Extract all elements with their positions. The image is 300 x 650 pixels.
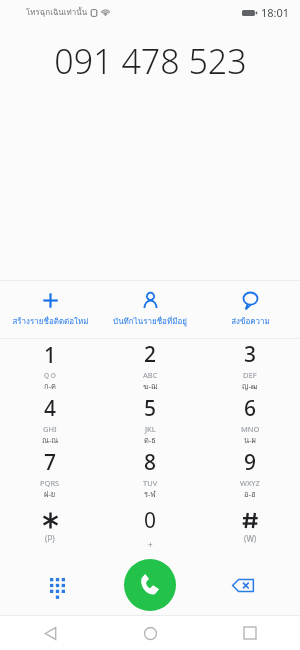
button[interactable]: 0 (100, 501, 200, 555)
staticText: อ-ฮ (244, 488, 256, 500)
button[interactable]: 9 (200, 447, 300, 501)
button[interactable]: 2 (100, 339, 200, 393)
staticText: ABC (143, 370, 158, 380)
staticText: (P) (45, 533, 55, 544)
button[interactable]: Back (0, 616, 100, 650)
staticText: TUV (143, 478, 158, 488)
button[interactable]: Save to existing contact (100, 281, 200, 338)
button[interactable]: 8 (100, 447, 200, 501)
staticText: 6 (244, 394, 257, 423)
staticText: 091 478 523 (54, 38, 247, 84)
staticText: ญ-ฒ (242, 380, 258, 392)
staticText: ร-ฬ (144, 488, 156, 500)
button[interactable]: Backspace (226, 568, 260, 602)
staticText: สร้างรายชื่อติดต่อใหม่ (12, 315, 89, 328)
staticText: 9 (244, 448, 257, 477)
staticText: ＱＯ (43, 371, 58, 380)
staticText: GHI (43, 424, 57, 434)
staticText: 7 (44, 448, 57, 477)
staticText: 0 (144, 506, 157, 535)
staticText: ต-ธ (144, 434, 156, 446)
staticText: ส่งข้อความ (231, 315, 270, 328)
staticText: DEF (243, 370, 257, 380)
staticText: ฆ-ฌ (143, 380, 158, 392)
staticText: JKL (145, 424, 156, 434)
staticText: MNO (241, 424, 260, 434)
button[interactable]: Create new contact (0, 281, 100, 338)
button[interactable]: Recents (200, 616, 300, 650)
staticText: ฝ-ย (44, 488, 56, 500)
staticText: 3 (244, 340, 257, 369)
staticText: PQRS (40, 478, 60, 488)
button[interactable]: 5 (100, 393, 200, 447)
button[interactable]: (W) (200, 501, 300, 555)
staticText: WXYZ (240, 478, 260, 488)
button[interactable]: 6 (200, 393, 300, 447)
staticText: 1 (44, 341, 57, 370)
staticText: 5 (144, 394, 157, 423)
staticText: บันทึกไนรายชื่อที่มีอยู่ (113, 315, 187, 328)
staticText: ณ-ณ (42, 434, 59, 446)
staticText: น-ผ (244, 434, 256, 446)
button[interactable]: 7 (0, 447, 100, 501)
staticText: (W) (244, 533, 257, 544)
button[interactable]: 3 (200, 339, 300, 393)
button[interactable]: 4 (0, 393, 100, 447)
button[interactable]: (P) (0, 501, 100, 555)
staticText: 2 (144, 340, 157, 369)
button[interactable]: Call (124, 559, 176, 611)
button[interactable]: Send message (200, 281, 300, 338)
staticText: 18:01 (261, 5, 290, 20)
staticText: โทรฉุกเฉินเท่านั้น (26, 6, 88, 19)
staticText: ก-ฅ (44, 380, 56, 392)
staticText: + (148, 539, 153, 550)
staticText: 4 (44, 394, 57, 423)
button[interactable]: 1 (0, 339, 100, 393)
button[interactable]: Home (100, 616, 200, 650)
button[interactable]: Keypad (40, 568, 74, 602)
staticText: 8 (144, 448, 157, 477)
